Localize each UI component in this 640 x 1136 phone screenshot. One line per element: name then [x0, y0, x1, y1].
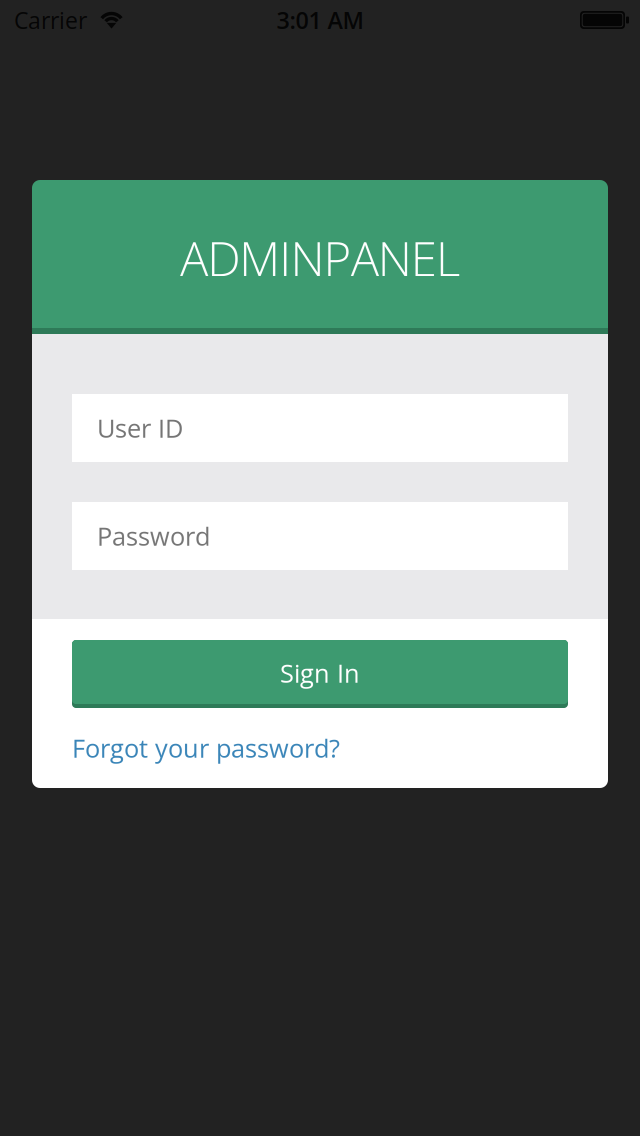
- staticText: Forgot your password?: [72, 731, 340, 765]
- button[interactable]: Sign In: [72, 640, 568, 708]
- staticText: Password: [97, 519, 210, 553]
- button[interactable]: Password: [72, 502, 568, 570]
- staticText: Carrier: [14, 4, 87, 36]
- staticText: User ID: [97, 411, 183, 445]
- button[interactable]: Forgot your password?: [72, 722, 340, 774]
- staticText: ADMINPANEL: [180, 226, 460, 290]
- staticText: 3:01 AM: [276, 4, 363, 36]
- button[interactable]: User ID: [72, 394, 568, 462]
- staticText: Sign In: [280, 656, 360, 690]
